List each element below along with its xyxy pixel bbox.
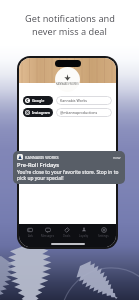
staticText: Deals <box>63 234 71 238</box>
staticText: Loyalty <box>79 234 89 238</box>
staticText: Ads <box>28 234 33 238</box>
button[interactable]: Instagram <box>23 108 112 117</box>
button[interactable]: KANNABIS WORKS <box>13 151 125 184</box>
staticText: You're close to your favorite store. Sto… <box>17 169 119 181</box>
staticText: Messages <box>41 234 54 238</box>
button[interactable]: Ads <box>26 227 34 238</box>
staticText: KANNABIS WORKS <box>56 82 79 86</box>
staticText: KANNABIS WORKS <box>25 155 59 160</box>
staticText: never miss a deal <box>32 25 107 38</box>
staticText: now <box>113 155 121 160</box>
button[interactable]: Messages <box>40 227 55 238</box>
staticText: Instagram <box>32 110 50 115</box>
button[interactable]: Settings <box>97 227 110 238</box>
button[interactable]: Loyalty <box>78 227 90 238</box>
staticText: @mkannaproductions <box>60 110 98 115</box>
button[interactable]: Deals <box>62 227 72 238</box>
staticText: Google <box>32 98 45 103</box>
staticText: Kannabis Works <box>60 98 88 103</box>
staticText: Get notifications and <box>25 12 115 25</box>
staticText: Pre-Roll Fridays <box>17 161 59 169</box>
button[interactable]: Google <box>23 96 112 105</box>
staticText: Settings <box>98 234 109 238</box>
